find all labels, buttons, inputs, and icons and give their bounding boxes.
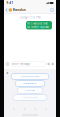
staticText: Enter message xyxy=(12,62,31,66)
staticText: Hi I would like to order a pizza xyxy=(27,22,48,29)
button[interactable]: Sounds good, see you then xyxy=(11,73,49,79)
staticText: What is the wait time xyxy=(25,90,35,91)
button[interactable]: Thanks, see you at six xyxy=(13,94,47,100)
staticText: Brandon xyxy=(12,8,26,12)
staticText: 9:41 xyxy=(7,1,14,5)
button[interactable]: Details xyxy=(50,6,54,14)
staticText: Can I get that delivered xyxy=(23,83,37,84)
staticText: Today 1:14 PM xyxy=(20,16,40,19)
staticText: Sounds good, see you then xyxy=(20,76,39,77)
button[interactable]: Camera xyxy=(47,63,50,65)
button[interactable]: Back xyxy=(5,6,9,14)
button[interactable]: Add attachment xyxy=(6,62,9,66)
button[interactable]: What is the wait time xyxy=(17,87,43,93)
button[interactable]: Can I get that delivered xyxy=(15,80,45,86)
button[interactable]: Suggestions xyxy=(5,71,9,75)
button[interactable]: Send xyxy=(51,63,54,65)
staticText: Thanks, see you at six xyxy=(22,97,37,98)
